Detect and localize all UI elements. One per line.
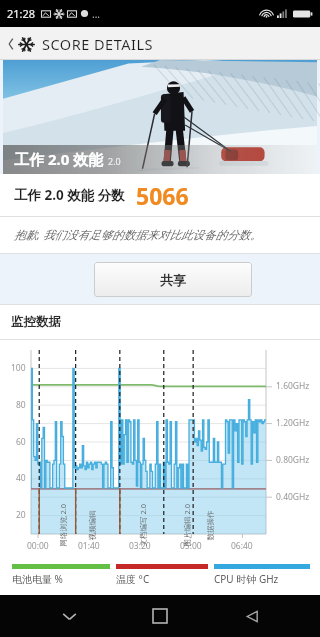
button[interactable]: 工作 2.0 效能 分数: [14, 174, 306, 216]
staticText: 20: [16, 509, 26, 521]
staticText: 0.40GHz: [276, 491, 310, 503]
staticText: 文档编写 2.0: [137, 503, 147, 546]
staticText: ...: [92, 7, 101, 21]
staticText: 1.60GHz: [276, 380, 310, 392]
staticText: 2.0: [108, 155, 121, 167]
staticText: CPU 时钟 GHz: [214, 572, 279, 586]
staticText: 05:00: [180, 540, 202, 552]
button[interactable]: Hide keyboard: [46, 595, 92, 637]
staticText: 1.20GHz: [276, 417, 310, 429]
staticText: 0.80GHz: [276, 454, 310, 466]
staticText: 温度 °C: [116, 572, 150, 586]
staticText: 100: [11, 362, 26, 374]
staticText: 共享: [160, 272, 186, 288]
staticText: 数据操作: [205, 510, 214, 540]
staticText: 图片编辑 2.0: [181, 503, 191, 546]
staticText: 06:40: [231, 540, 253, 552]
staticText: 网络浏览 2.0: [57, 503, 67, 546]
staticText: 21:28: [7, 6, 36, 21]
staticText: 00:00: [27, 540, 49, 552]
staticText: 40: [16, 472, 26, 484]
button[interactable]: 工作 2.0 效能: [3, 60, 317, 174]
staticText: 抱歉, 我们没有足够的数据来对比此设备的分数。: [14, 227, 262, 243]
button[interactable]: 共享: [94, 262, 252, 297]
button[interactable]: Back: [4, 29, 18, 59]
button[interactable]: Back: [229, 595, 275, 637]
staticText: 03:20: [129, 540, 151, 552]
staticText: 工作 2.0 效能 分数: [14, 186, 125, 204]
staticText: 5066: [136, 180, 189, 211]
staticText: 工作 2.0 效能: [14, 149, 104, 169]
staticText: 80: [16, 399, 26, 411]
staticText: 视频编辑: [87, 510, 96, 540]
staticText: 60: [16, 436, 26, 448]
staticText: SCORE DETAILS: [42, 34, 153, 54]
staticText: 监控数据: [11, 314, 61, 330]
staticText: 01:40: [78, 540, 100, 552]
button[interactable]: Home: [137, 595, 183, 637]
staticText: 电池电量 %: [12, 572, 63, 586]
